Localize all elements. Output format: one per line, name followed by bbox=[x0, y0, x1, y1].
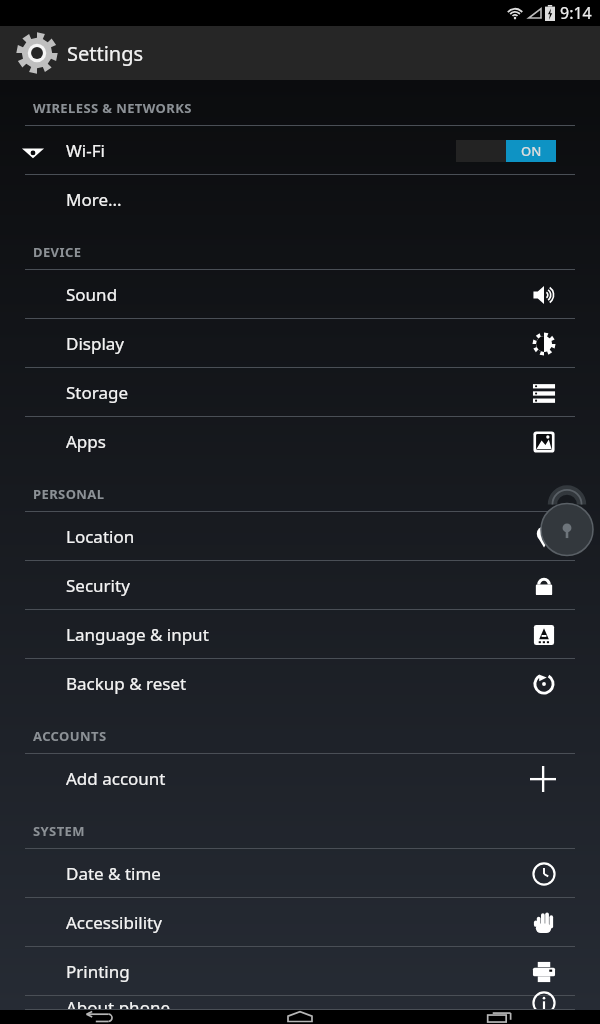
staticText: About phone bbox=[66, 996, 171, 1010]
staticText: Date & time bbox=[66, 862, 161, 885]
button[interactable]: Sound bbox=[0, 270, 600, 319]
button[interactable]: Recent apps bbox=[400, 1010, 600, 1024]
staticText: Accessibility bbox=[66, 911, 162, 934]
staticText: WIRELESS & NETWORKS bbox=[33, 99, 192, 117]
button[interactable]: Back bbox=[0, 1010, 200, 1024]
button[interactable]: Language & input bbox=[0, 610, 600, 659]
staticText: ACCOUNTS bbox=[33, 727, 107, 745]
staticText: Wi-Fi bbox=[66, 139, 105, 162]
staticText: Sound bbox=[66, 283, 118, 306]
button[interactable]: Printing bbox=[0, 947, 600, 996]
button[interactable]: Home bbox=[200, 1010, 400, 1024]
button[interactable]: Add account bbox=[0, 754, 600, 803]
button[interactable]: Display bbox=[0, 319, 600, 368]
staticText: PERSONAL bbox=[33, 485, 105, 503]
staticText: SYSTEM bbox=[33, 822, 85, 840]
button[interactable]: Date & time bbox=[0, 849, 600, 898]
button[interactable]: Security bbox=[0, 561, 600, 610]
button[interactable]: Wi-Fi bbox=[0, 126, 600, 175]
staticText: Storage bbox=[66, 381, 129, 404]
staticText: Backup & reset bbox=[66, 672, 187, 695]
button[interactable]: Accessibility bbox=[0, 898, 600, 947]
button[interactable]: Backup & reset bbox=[0, 659, 600, 708]
staticText: 9:14 bbox=[560, 2, 592, 24]
button[interactable]: Wi-Fi on bbox=[456, 140, 556, 162]
staticText: Location bbox=[66, 525, 135, 548]
button[interactable]: Storage bbox=[0, 368, 600, 417]
staticText: Language & input bbox=[66, 623, 209, 646]
staticText: Printing bbox=[66, 960, 130, 983]
staticText: Settings bbox=[67, 40, 144, 67]
staticText: Add account bbox=[66, 767, 166, 790]
staticText: Security bbox=[66, 574, 130, 597]
staticText: DEVICE bbox=[33, 243, 82, 261]
button[interactable]: More... bbox=[0, 175, 600, 224]
staticText: ON bbox=[521, 142, 542, 160]
staticText: Display bbox=[66, 332, 124, 355]
staticText: Apps bbox=[66, 430, 106, 453]
button[interactable]: Apps bbox=[0, 417, 600, 466]
button[interactable]: Location bbox=[0, 512, 600, 561]
staticText: More... bbox=[66, 188, 122, 211]
button[interactable]: About phone bbox=[0, 996, 600, 1010]
button[interactable]: Settings bbox=[0, 26, 600, 80]
